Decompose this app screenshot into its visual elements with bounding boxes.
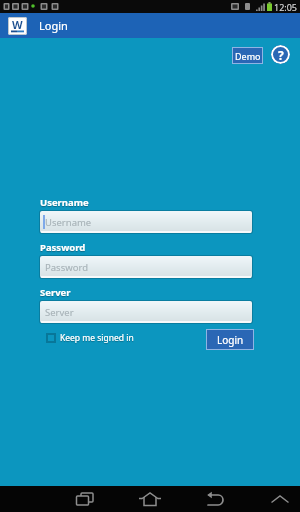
- staticText: Demo: [235, 50, 261, 62]
- button[interactable]: [225, 486, 300, 512]
- button[interactable]: Password: [40, 256, 252, 278]
- button[interactable]: Username: [40, 211, 252, 233]
- staticText: Username: [40, 196, 89, 209]
- staticText: Password: [40, 241, 86, 254]
- staticText: Keep me signed in: [60, 332, 134, 344]
- staticText: Server: [40, 286, 71, 299]
- staticText: Login: [217, 333, 244, 347]
- button[interactable]: Demo: [232, 47, 263, 64]
- staticText: 12:05: [274, 1, 298, 13]
- staticText: W: [12, 17, 23, 32]
- staticText: Username: [45, 216, 92, 229]
- button[interactable]: ?: [271, 45, 290, 64]
- staticText: Login: [39, 18, 68, 33]
- button[interactable]: Server: [40, 301, 252, 323]
- staticText: Server: [45, 306, 74, 319]
- button[interactable]: [75, 486, 150, 512]
- staticText: Password: [45, 261, 88, 274]
- button[interactable]: Keep me signed in: [46, 332, 134, 344]
- staticText: ?: [278, 47, 284, 63]
- button[interactable]: Login: [206, 329, 254, 350]
- button[interactable]: [150, 486, 225, 512]
